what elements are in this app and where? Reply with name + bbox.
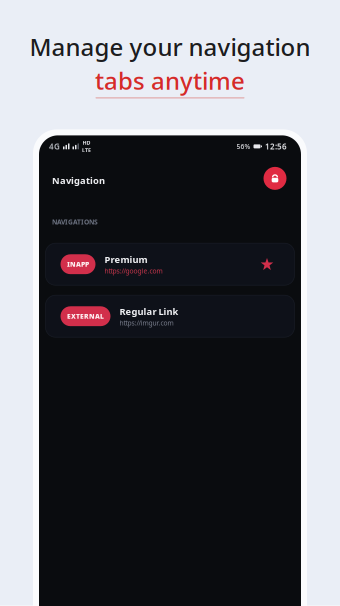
staticText: 4G: [49, 141, 60, 152]
staticText: INAPP: [67, 260, 89, 269]
staticText: https://google.com: [104, 266, 162, 275]
staticText: 12:56: [265, 141, 287, 152]
staticText: EXTERNAL: [67, 312, 104, 321]
button[interactable]: Privacy lock: [262, 165, 288, 191]
staticText: https://imgur.com: [119, 318, 173, 327]
staticText: Premium: [104, 253, 147, 265]
staticText: Manage your navigation: [29, 31, 310, 62]
button[interactable]: INAPP: [45, 243, 294, 285]
staticText: LTE: [82, 147, 91, 154]
staticText: Regular Link: [119, 305, 178, 317]
button[interactable]: EXTERNAL: [45, 295, 294, 337]
staticText: 56%: [236, 142, 250, 151]
staticText: tabs anytime: [95, 64, 245, 96]
staticText: HD: [82, 139, 90, 146]
staticText: Navigation: [52, 174, 105, 187]
staticText: NAVIGATIONS: [52, 217, 98, 226]
